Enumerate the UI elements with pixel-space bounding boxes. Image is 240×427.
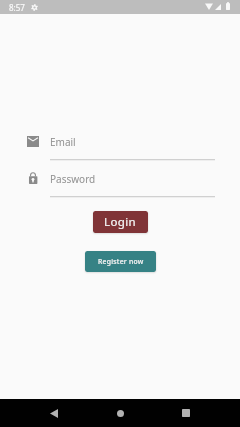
button[interactable]: Home xyxy=(100,399,140,427)
button[interactable]: Back xyxy=(34,399,74,427)
button[interactable]: Register now xyxy=(85,251,156,272)
staticText: Register now xyxy=(98,257,144,266)
staticText: Password xyxy=(50,172,96,186)
staticText: Email xyxy=(50,135,76,149)
button[interactable]: Login xyxy=(93,211,148,233)
staticText: Login xyxy=(104,214,137,230)
button[interactable]: Recents xyxy=(166,399,206,427)
staticText: 8:57 xyxy=(9,2,25,13)
